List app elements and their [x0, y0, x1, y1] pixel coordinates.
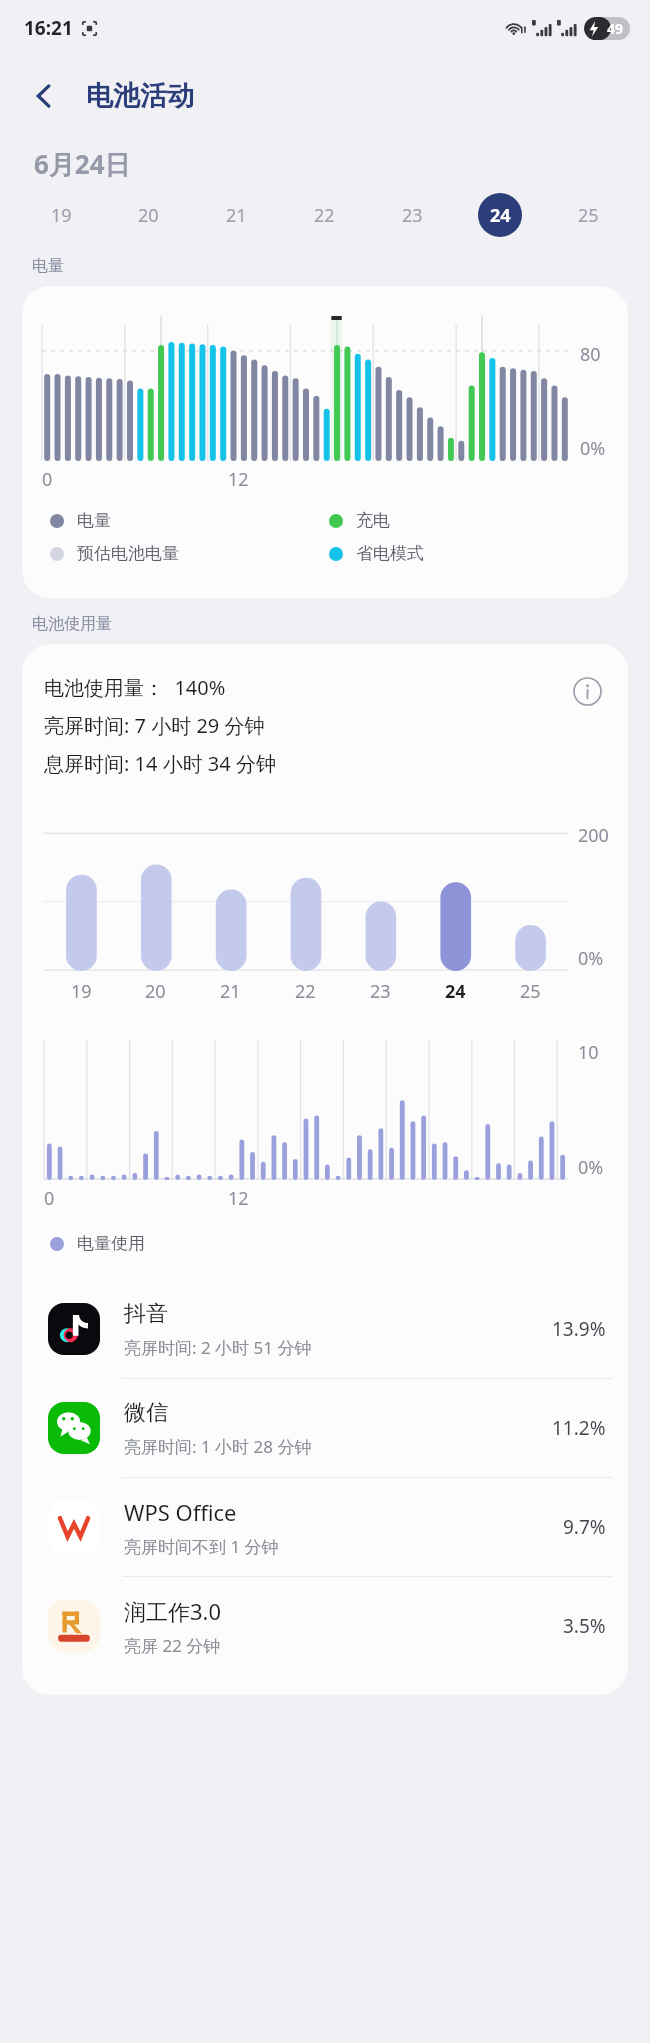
staticText: WPS Office [124, 1497, 237, 1527]
button[interactable]: 24 [456, 188, 544, 242]
staticText: 亮屏时间: 1 小时 28 分钟 [124, 1435, 312, 1458]
staticText: 22 [314, 203, 335, 228]
staticText: 亮屏时间不到 1 分钟 [124, 1535, 279, 1558]
staticText: 0% [578, 1155, 604, 1180]
staticText: 21 [220, 979, 241, 1004]
button[interactable]: 润工作3.0 [22, 1577, 628, 1675]
staticText: 200 [578, 823, 609, 848]
staticText: 25 [578, 203, 599, 228]
staticText: 0% [578, 946, 604, 971]
staticText: 6月24日 [34, 146, 131, 182]
staticText: 电量 [32, 256, 64, 276]
button[interactable]: 80 [22, 286, 628, 598]
staticText: 电池使用量 [32, 614, 112, 634]
button[interactable]: 22 [280, 188, 368, 242]
staticText: 0 [44, 1186, 55, 1211]
staticText: 省电模式 [356, 543, 424, 564]
staticText: 21 [226, 203, 247, 228]
staticText: 49 [607, 19, 624, 38]
staticText: 25 [520, 979, 541, 1004]
button[interactable]: 23 [368, 188, 456, 242]
staticText: 16:21 [24, 15, 73, 41]
staticText: 0 [42, 467, 53, 492]
button[interactable]: WPS Office [22, 1478, 628, 1576]
staticText: 80 [580, 342, 601, 367]
staticText: 息屏时间: 14 小时 34 分钟 [44, 750, 276, 777]
button[interactable]: 返回 [18, 69, 72, 123]
staticText: 微信 [124, 1399, 168, 1427]
staticText: 电池使用量： 140% [44, 674, 226, 701]
staticText: 电池活动 [86, 79, 194, 113]
staticText: 10 [578, 1040, 599, 1065]
staticText: 抖音 [124, 1300, 168, 1328]
staticText: 3.5% [563, 1613, 606, 1639]
staticText: 19 [51, 203, 72, 228]
staticText: 预估电池电量 [77, 543, 179, 564]
staticText: 22 [295, 979, 316, 1004]
button[interactable]: 25 [544, 188, 632, 242]
staticText: 12 [228, 467, 249, 492]
staticText: 电量使用 [77, 1233, 145, 1254]
staticText: 亮屏 22 分钟 [124, 1634, 221, 1657]
staticText: 20 [138, 203, 159, 228]
staticText: 12 [228, 1186, 249, 1211]
staticText: 亮屏时间: 7 小时 29 分钟 [44, 712, 265, 739]
button[interactable]: 微信 [22, 1379, 628, 1477]
staticText: 11.2% [552, 1415, 606, 1441]
staticText: 23 [370, 979, 391, 1004]
button[interactable]: 19 [18, 188, 105, 242]
staticText: 充电 [356, 510, 390, 531]
button[interactable]: 信息 [566, 670, 608, 712]
staticText: 0% [580, 436, 606, 461]
staticText: 亮屏时间: 2 小时 51 分钟 [124, 1336, 312, 1359]
staticText: 9.7% [563, 1514, 606, 1540]
staticText: 23 [402, 203, 423, 228]
staticText: 19 [71, 979, 92, 1004]
button[interactable]: 抖音 [22, 1280, 628, 1378]
staticText: 13.9% [552, 1316, 606, 1342]
staticText: 润工作3.0 [124, 1596, 222, 1626]
staticText: 24 [445, 979, 466, 1004]
staticText: 电量 [77, 510, 111, 531]
button[interactable]: 21 [192, 188, 280, 242]
button[interactable]: 20 [105, 188, 192, 242]
staticText: 24 [490, 203, 511, 228]
staticText: 20 [145, 979, 166, 1004]
